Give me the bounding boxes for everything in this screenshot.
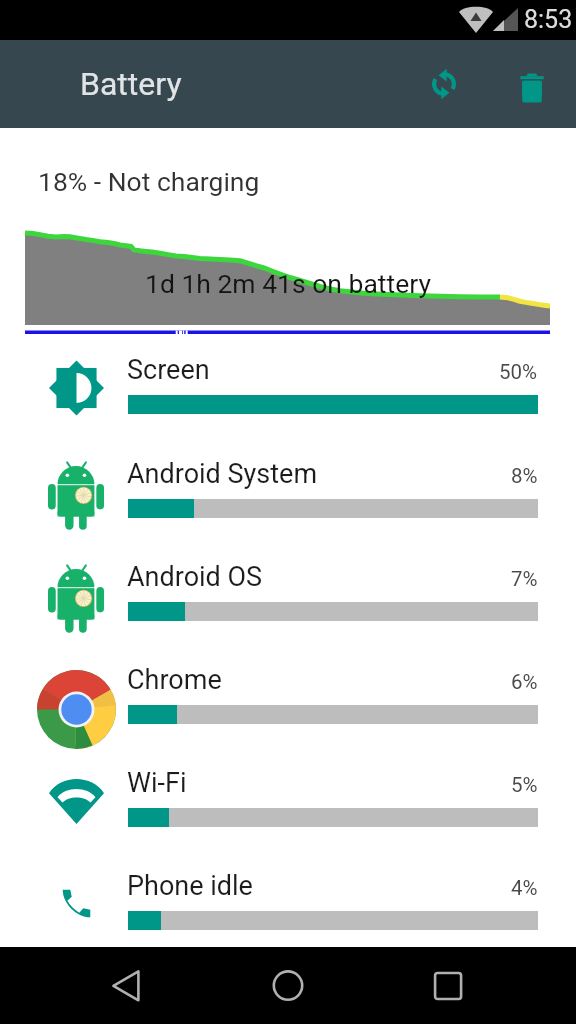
- staticText: 1d 1h 2m 41s on battery: [145, 268, 431, 299]
- staticText: Battery: [80, 65, 182, 103]
- staticText: 7%: [511, 567, 538, 591]
- staticText: 50%: [499, 360, 538, 384]
- staticText: 5%: [511, 773, 538, 797]
- button[interactable]: Screen: [0, 352, 576, 455]
- button[interactable]: Chrome: [0, 662, 576, 765]
- button[interactable]: Delete: [488, 40, 576, 128]
- button[interactable]: Android OS: [0, 559, 576, 662]
- button[interactable]: Refresh: [400, 40, 488, 128]
- button[interactable]: Wi-Fi: [0, 765, 576, 868]
- button[interactable]: Home: [260, 958, 316, 1014]
- staticText: 18% - Not charging: [38, 166, 260, 197]
- staticText: Wi-Fi: [127, 767, 187, 799]
- staticText: Phone idle: [127, 870, 253, 902]
- staticText: 4%: [511, 876, 538, 900]
- staticText: 6%: [511, 670, 538, 694]
- button[interactable]: Back: [98, 958, 154, 1014]
- staticText: 8:53: [524, 5, 573, 34]
- staticText: Android System: [127, 458, 318, 490]
- staticText: Screen: [127, 354, 210, 386]
- button[interactable]: Phone idle: [0, 868, 576, 971]
- staticText: 8%: [511, 464, 538, 488]
- staticText: Android OS: [127, 561, 263, 593]
- button[interactable]: Android System: [0, 456, 576, 559]
- button[interactable]: Recents: [420, 958, 476, 1014]
- staticText: Chrome: [127, 664, 222, 696]
